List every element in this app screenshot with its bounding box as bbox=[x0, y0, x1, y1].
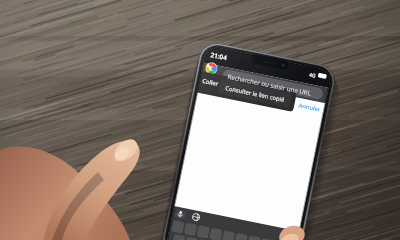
button[interactable]: Hand holding smartphone on wooden table bbox=[0, 0, 400, 240]
